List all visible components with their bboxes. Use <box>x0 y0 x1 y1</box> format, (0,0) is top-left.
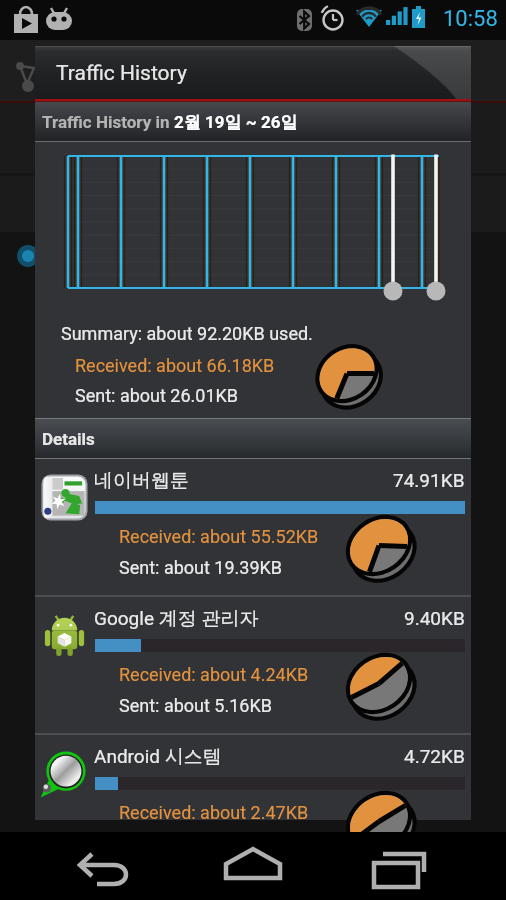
staticText: Summary: about 92.20KB used. <box>61 323 313 344</box>
staticText: Traffic History in <box>42 112 174 132</box>
staticText: 네이버웹툰 <box>94 469 189 493</box>
button[interactable]: Back <box>64 832 148 900</box>
button[interactable]: Home <box>211 832 295 900</box>
staticText: Received: about 66.18KB <box>75 355 275 376</box>
staticText: 9.40KB <box>404 607 465 629</box>
staticText: Sent: about 19.39KB <box>119 557 283 578</box>
staticText: Sent: about 26.01KB <box>75 385 239 406</box>
staticText: 2월 19일 ~ 26일 <box>174 112 298 133</box>
staticText: Details <box>42 429 95 449</box>
button[interactable]: 네이버웹툰 <box>35 459 471 595</box>
button[interactable]: Android 시스템 <box>35 735 471 820</box>
staticText: Received: about 55.52KB <box>119 526 319 547</box>
staticText: 10:58 <box>443 6 498 32</box>
staticText: Traffic History <box>56 61 187 86</box>
staticText: Received: about 4.24KB <box>119 664 309 685</box>
staticText: 4.72KB <box>404 745 465 767</box>
button[interactable]: Recent apps <box>359 832 443 900</box>
staticText: Received: about 2.47KB <box>119 802 309 823</box>
button[interactable]: Google 계정 관리자 <box>35 597 471 733</box>
staticText: 74.91KB <box>393 469 465 491</box>
staticText: Sent: about 5.16KB <box>119 695 272 716</box>
staticText: Google 계정 관리자 <box>94 607 259 631</box>
staticText: Android 시스템 <box>94 745 222 769</box>
